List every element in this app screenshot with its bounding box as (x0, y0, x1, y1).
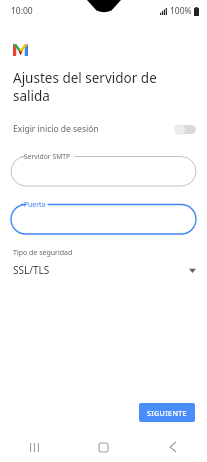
staticText: Ajustes del servidor de salida (13, 69, 197, 105)
staticText: Exigir inicio de sesión (13, 123, 99, 135)
staticText: SSL/TLS (13, 263, 50, 277)
staticText: Puerto (24, 200, 46, 209)
button[interactable]: Exigir inicio de sesión (0, 119, 207, 139)
staticText: 10:00 (11, 5, 33, 17)
button[interactable]: Puerto (11, 200, 196, 234)
staticText: SIGUIENTE (147, 408, 187, 418)
button[interactable]: Servidor SMTP (11, 152, 196, 186)
button[interactable]: SIGUIENTE (139, 403, 195, 422)
button[interactable]: Tipo de seguridad (0, 248, 207, 277)
button[interactable]: Home (69, 432, 138, 462)
button[interactable]: Back (138, 432, 207, 462)
staticText: Servidor SMTP (24, 152, 71, 161)
button[interactable]: Recent apps (0, 432, 69, 462)
staticText: Tipo de seguridad (13, 248, 73, 258)
staticText: 100% (170, 5, 192, 17)
